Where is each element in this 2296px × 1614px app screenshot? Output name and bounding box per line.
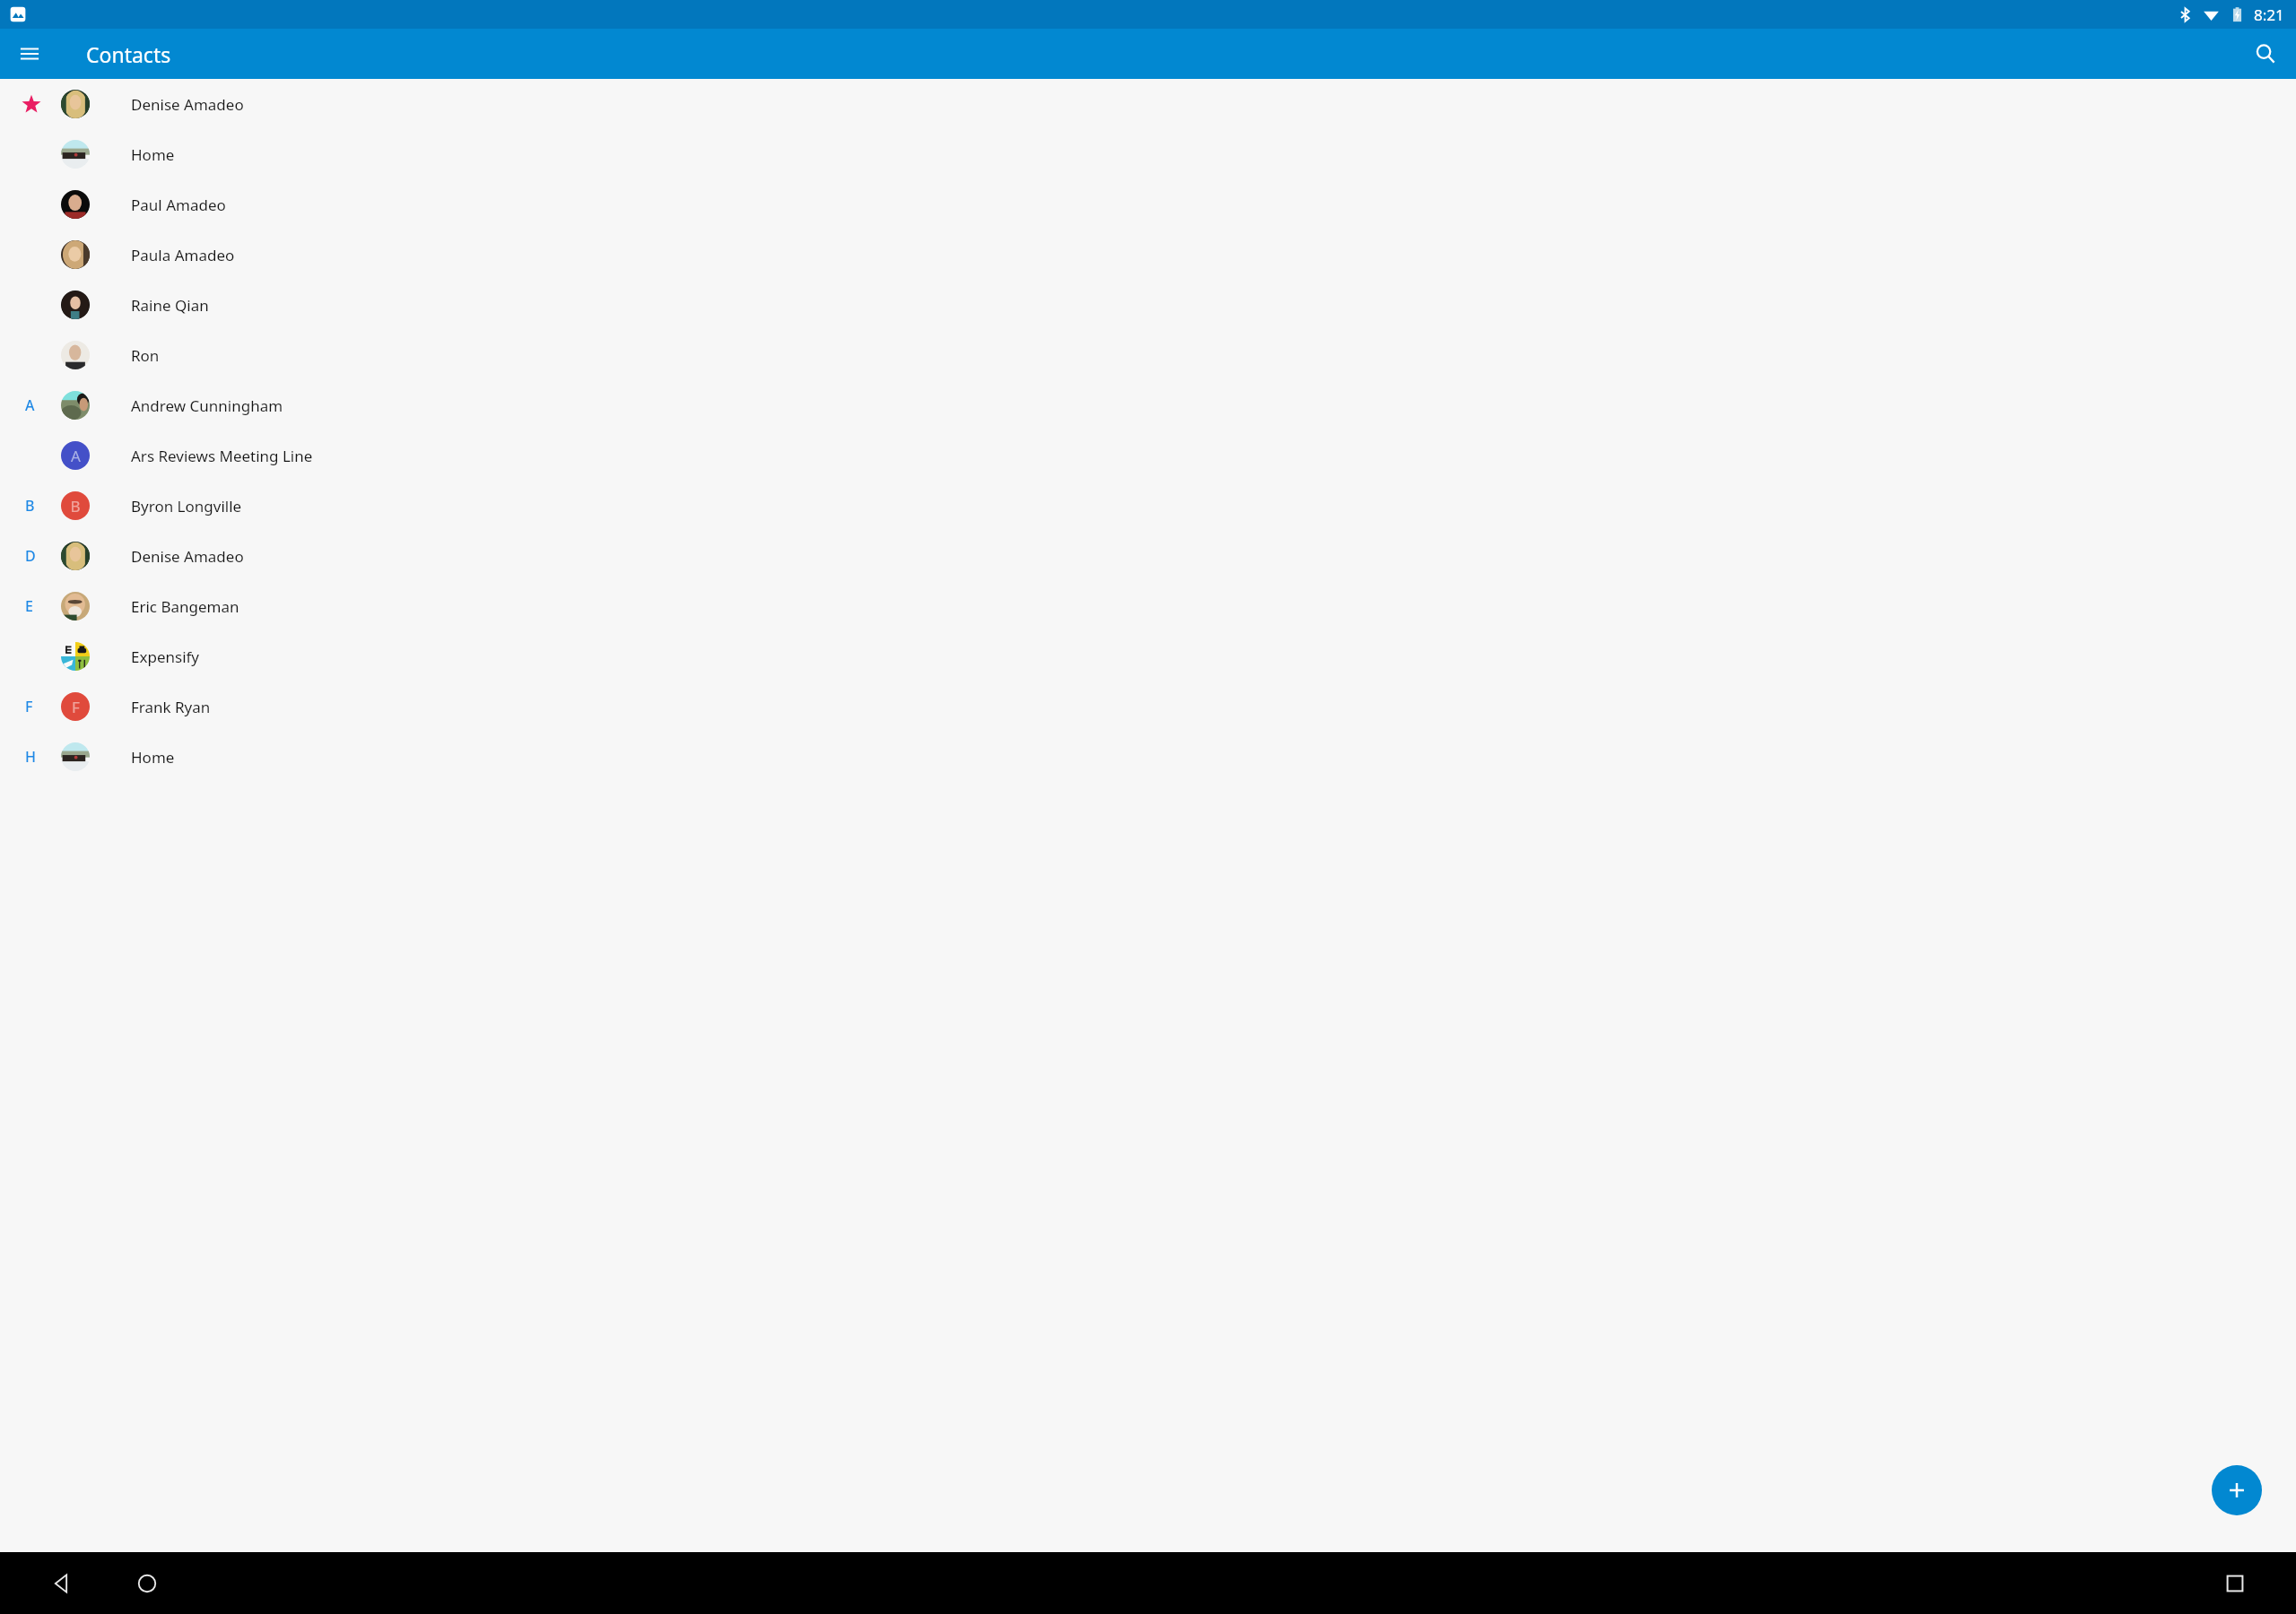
staticText: Home — [131, 144, 175, 165]
staticText: Frank Ryan — [131, 697, 211, 717]
staticText: F — [25, 697, 33, 716]
button[interactable]: Ron — [0, 330, 2296, 380]
staticText: Contacts — [86, 40, 171, 68]
button[interactable]: Paul Amadeo — [0, 179, 2296, 230]
staticText: Eric Bangeman — [131, 596, 239, 617]
staticText: Home — [131, 747, 175, 768]
button[interactable]: Denise Amadeo — [0, 79, 2296, 129]
staticText: F — [72, 697, 80, 717]
button[interactable]: Back — [39, 1562, 83, 1605]
button[interactable]: Add contact — [2212, 1465, 2262, 1515]
staticText: Expensify — [131, 646, 200, 667]
staticText: B — [70, 496, 81, 516]
staticText: Denise Amadeo — [131, 546, 244, 567]
button[interactable]: Home — [126, 1562, 169, 1605]
staticText: Paul Amadeo — [131, 195, 226, 215]
button[interactable]: A — [0, 380, 2296, 430]
button[interactable]: H — [0, 732, 2296, 782]
button[interactable]: F — [0, 681, 2296, 732]
staticText: Ars Reviews Meeting Line — [131, 446, 313, 466]
staticText: A — [71, 446, 81, 466]
staticText: D — [25, 546, 36, 566]
button[interactable]: Recent apps — [2213, 1562, 2257, 1605]
button[interactable]: A — [0, 430, 2296, 481]
staticText: E — [25, 596, 33, 616]
staticText: H — [25, 747, 36, 767]
staticText: Raine Qian — [131, 295, 209, 316]
button[interactable]: B — [0, 481, 2296, 531]
staticText: B — [25, 496, 35, 516]
button[interactable]: D — [0, 531, 2296, 581]
staticText: Paula Amadeo — [131, 245, 235, 265]
button[interactable]: Home — [0, 129, 2296, 179]
staticText: Denise Amadeo — [131, 94, 244, 115]
button[interactable]: Raine Qian — [0, 280, 2296, 330]
staticText: 8:21 — [2254, 4, 2284, 25]
button[interactable]: Open navigation drawer — [8, 32, 51, 75]
staticText: Andrew Cunningham — [131, 395, 283, 416]
staticText: A — [25, 395, 35, 415]
button[interactable]: Paula Amadeo — [0, 230, 2296, 280]
button[interactable]: E — [0, 581, 2296, 631]
staticText: Ron — [131, 345, 160, 366]
button[interactable]: Search — [2244, 32, 2287, 75]
button[interactable]: Expensify — [0, 631, 2296, 681]
staticText: Byron Longville — [131, 496, 242, 516]
